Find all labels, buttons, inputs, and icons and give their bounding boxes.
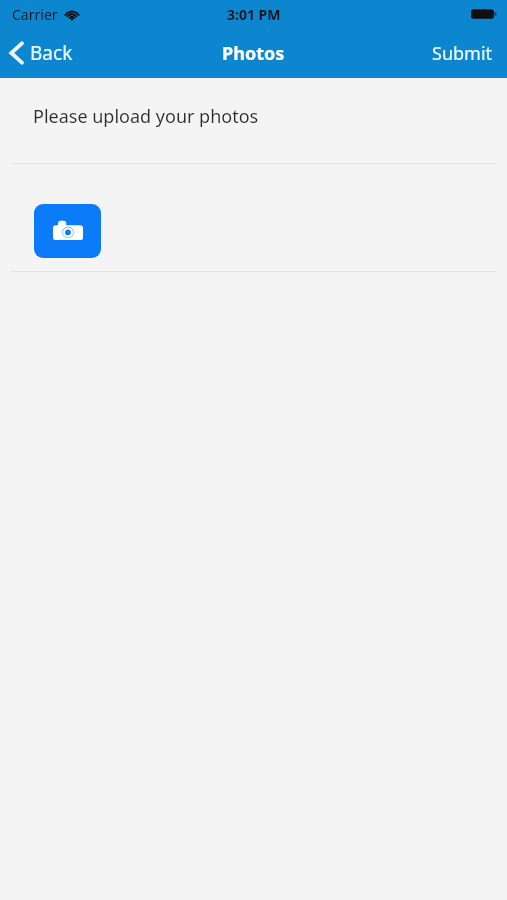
staticText: 3:01 PM xyxy=(227,5,281,24)
button[interactable]: Take photo xyxy=(34,204,101,258)
staticText: Back xyxy=(30,40,73,66)
staticText: Carrier xyxy=(12,5,58,24)
staticText: Please upload your photos xyxy=(33,104,259,129)
button[interactable]: Back xyxy=(0,34,87,72)
staticText: Photos xyxy=(222,41,285,66)
staticText: Submit xyxy=(432,41,493,66)
button[interactable]: Submit xyxy=(418,33,507,74)
other: Back xyxy=(10,42,23,64)
